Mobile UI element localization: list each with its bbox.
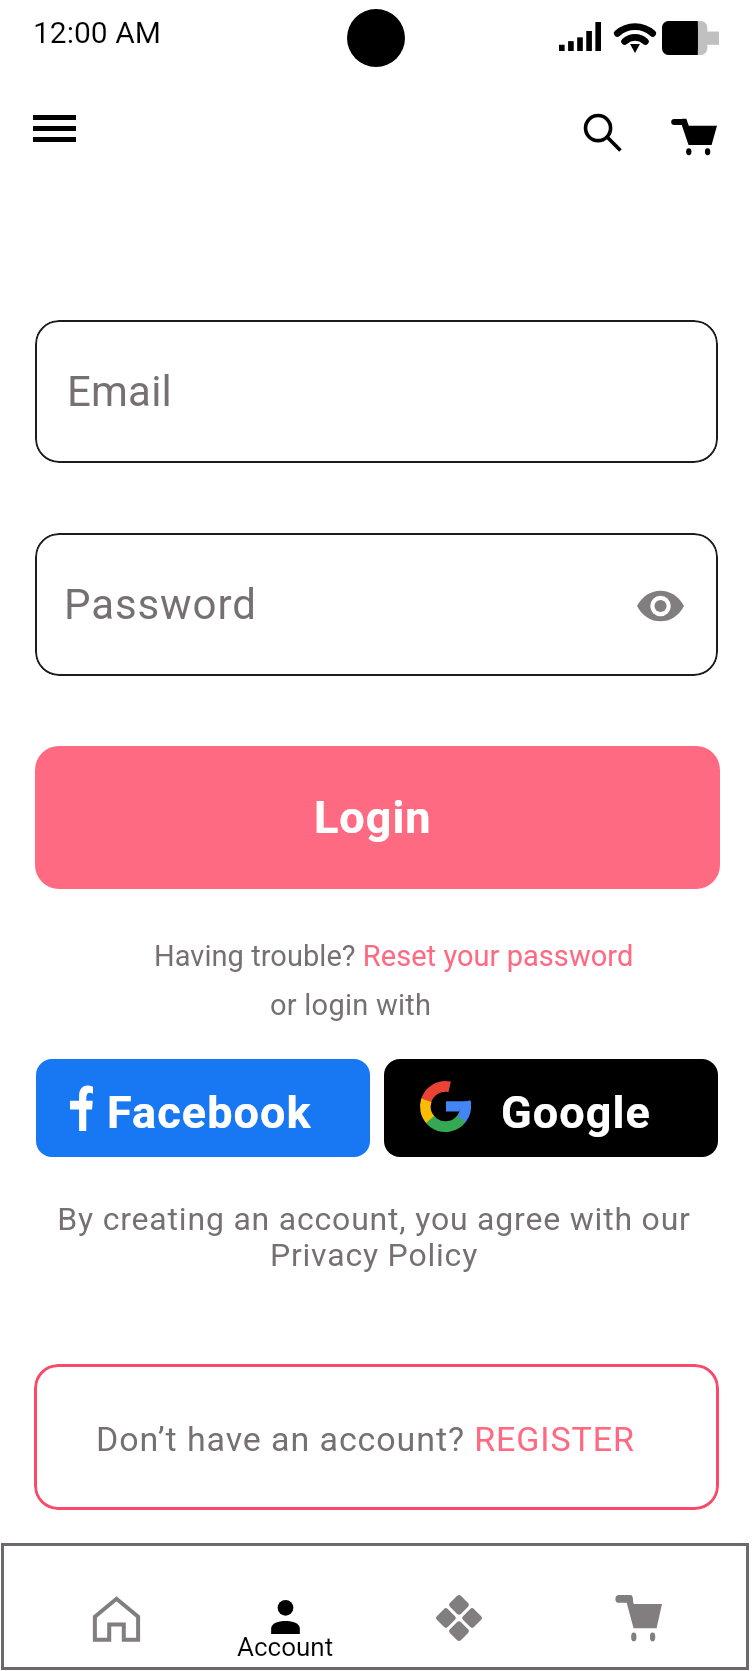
staticText: Having trouble? Reset your password <box>154 939 634 973</box>
staticText: or login with <box>270 988 432 1022</box>
button[interactable]: Google <box>384 1059 718 1157</box>
button[interactable]: Cart <box>591 1573 685 1667</box>
staticText: 12:00 AM <box>33 15 161 50</box>
button[interactable]: Cart <box>655 100 731 176</box>
staticText: Google <box>501 1086 651 1139</box>
staticText: Password <box>64 580 257 629</box>
button[interactable]: Don’t have an account? REGISTER <box>34 1364 719 1510</box>
button[interactable]: Home <box>69 1572 163 1666</box>
staticText: Login <box>314 791 432 844</box>
button[interactable]: Facebook <box>36 1059 370 1157</box>
staticText: Facebook <box>107 1086 312 1139</box>
button[interactable]: Password <box>35 533 718 676</box>
button[interactable]: Login <box>35 746 720 889</box>
staticText: Email <box>67 367 172 416</box>
button[interactable]: Search <box>565 95 641 171</box>
button[interactable]: Account <box>225 1569 345 1665</box>
button[interactable]: Show password <box>625 571 695 641</box>
button[interactable]: Categories <box>412 1571 506 1665</box>
staticText: By creating an account, you agree with o… <box>28 1200 720 1274</box>
staticText: Account <box>237 1632 334 1662</box>
button[interactable]: Menu <box>16 90 92 166</box>
button[interactable]: Email <box>35 320 718 463</box>
staticText: Don’t have an account? REGISTER <box>96 1419 635 1459</box>
